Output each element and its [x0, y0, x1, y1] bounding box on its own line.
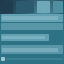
button[interactable]: Add: [1, 57, 5, 61]
button[interactable]: Header: [0, 0, 64, 14]
button[interactable]: [1, 14, 63, 22]
button[interactable]: [1, 45, 63, 54]
button[interactable]: [1, 34, 49, 41]
